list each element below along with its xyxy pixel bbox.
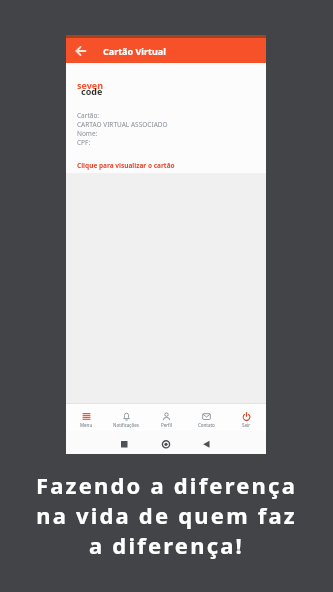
button[interactable] — [75, 45, 87, 57]
staticText: Menu — [80, 422, 93, 428]
button[interactable]: Notificações — [106, 404, 146, 431]
staticText: Nome: — [77, 129, 98, 138]
staticText: Perfil — [161, 422, 172, 428]
staticText: seven — [77, 79, 104, 91]
button[interactable]: Contato — [186, 404, 226, 431]
staticText: Cartão: — [77, 111, 100, 120]
button[interactable]: Menu — [66, 404, 106, 431]
staticText: Sair — [242, 422, 251, 428]
staticText: CPF: — [77, 138, 91, 147]
staticText: Fazendo a diferença na vida de quem faz … — [0, 470, 333, 560]
button[interactable]: Sair — [226, 404, 266, 431]
button[interactable]: Perfil — [146, 404, 186, 431]
staticText: CARTAO VIRTUAL ASSOCIADO — [77, 120, 168, 129]
button[interactable]: Clique para visualizar o cartão — [77, 161, 175, 170]
staticText: Notificações — [113, 422, 139, 428]
staticText: Cartão Virtual — [103, 45, 166, 57]
staticText: Contato — [198, 422, 215, 428]
staticText: code — [81, 85, 103, 97]
